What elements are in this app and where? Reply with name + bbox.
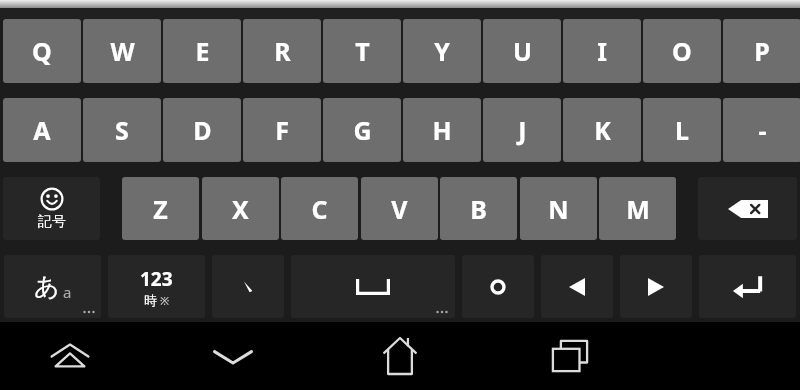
staticText: D	[193, 113, 212, 147]
button[interactable]: Home	[345, 322, 455, 390]
button[interactable]: D	[163, 98, 241, 162]
staticText: P	[754, 34, 770, 68]
button[interactable]: F	[243, 98, 321, 162]
staticText: R	[274, 34, 291, 68]
staticText: A	[33, 113, 51, 147]
button[interactable]: P	[723, 19, 800, 83]
staticText: B	[470, 192, 487, 226]
button[interactable]: Back	[175, 322, 290, 390]
button[interactable]: Comma	[212, 255, 284, 318]
button[interactable]: G	[323, 98, 401, 162]
button[interactable]: Period	[462, 255, 534, 318]
button[interactable]: U	[483, 19, 561, 83]
button[interactable]: Cursor left	[541, 255, 613, 318]
staticText: V	[391, 192, 408, 226]
button[interactable]: I	[563, 19, 641, 83]
staticText: Q	[32, 34, 52, 68]
button[interactable]: B	[440, 177, 517, 240]
staticText: L	[675, 113, 689, 147]
staticText: 時	[144, 292, 157, 308]
staticText: X	[232, 192, 249, 226]
staticText: G	[353, 113, 372, 147]
staticText: 記号	[38, 213, 66, 231]
button[interactable]: A	[3, 98, 81, 162]
staticText: C	[311, 192, 328, 226]
staticText: W	[110, 34, 135, 68]
staticText: E	[195, 34, 210, 68]
button[interactable]: Hide keyboard	[10, 322, 130, 390]
staticText: T	[355, 34, 370, 68]
staticText: I	[597, 34, 607, 68]
button[interactable]: Backspace	[698, 177, 797, 240]
staticText: S	[115, 113, 129, 147]
staticText: -	[758, 113, 767, 147]
button[interactable]: Z	[122, 177, 199, 240]
button[interactable]: M	[599, 177, 676, 240]
staticText: Z	[153, 192, 168, 226]
staticText: 123	[140, 266, 173, 292]
button[interactable]: Enter	[699, 255, 796, 318]
button[interactable]: T	[323, 19, 401, 83]
staticText: M	[626, 192, 650, 226]
button[interactable]: J	[483, 98, 561, 162]
button[interactable]: Space	[291, 255, 455, 318]
button[interactable]: W	[83, 19, 161, 83]
staticText: H	[432, 113, 452, 147]
staticText: U	[513, 34, 532, 68]
staticText: a	[63, 282, 72, 302]
button[interactable]: N	[520, 177, 597, 240]
button[interactable]: Q	[3, 19, 81, 83]
button[interactable]: K	[563, 98, 641, 162]
button[interactable]: Recent apps	[515, 322, 625, 390]
staticText: F	[275, 113, 289, 147]
button[interactable]: Cursor right	[620, 255, 692, 318]
button[interactable]: C	[281, 177, 358, 240]
staticText: N	[548, 192, 569, 226]
button[interactable]: O	[643, 19, 721, 83]
button[interactable]: Input mode	[4, 255, 101, 318]
staticText: Y	[434, 34, 450, 68]
button[interactable]: Y	[403, 19, 481, 83]
staticText: J	[518, 113, 527, 147]
button[interactable]: E	[163, 19, 241, 83]
button[interactable]: X	[202, 177, 279, 240]
button[interactable]: Numbers	[108, 255, 205, 318]
button[interactable]: H	[403, 98, 481, 162]
staticText: あ	[34, 271, 60, 302]
staticText: ※	[160, 293, 170, 308]
button[interactable]: -	[723, 98, 800, 162]
button[interactable]: R	[243, 19, 321, 83]
button[interactable]: L	[643, 98, 721, 162]
staticText: O	[672, 34, 692, 68]
button[interactable]: S	[83, 98, 161, 162]
button[interactable]: Symbols	[3, 177, 100, 240]
staticText: K	[594, 113, 611, 147]
button[interactable]: V	[361, 177, 438, 240]
